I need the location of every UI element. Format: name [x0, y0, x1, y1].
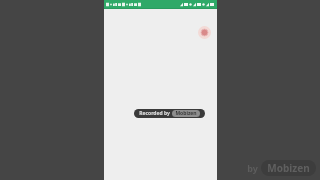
staticText: Mobizen: [175, 110, 197, 117]
button[interactable]: Recording indicator: [198, 26, 211, 39]
staticText: Mobizen: [267, 161, 310, 175]
button[interactable]: Recorded by: [139, 110, 200, 117]
staticText: Recorded by: [139, 110, 170, 117]
staticText: by: [247, 162, 258, 174]
